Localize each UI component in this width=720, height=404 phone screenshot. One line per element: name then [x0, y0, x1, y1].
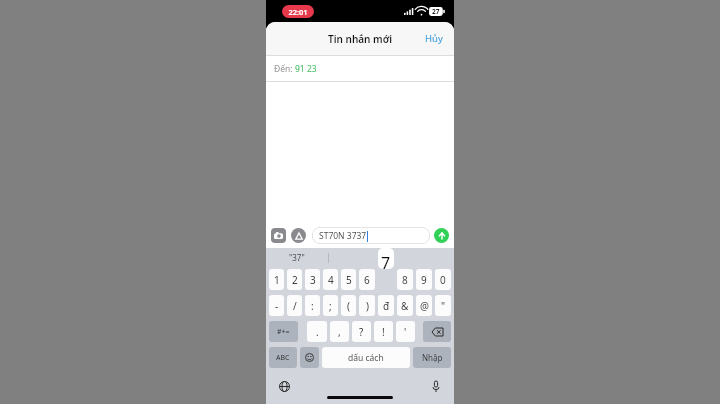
button[interactable]: ! [374, 321, 393, 342]
staticText: 7 [381, 252, 391, 269]
staticText: ; [329, 299, 332, 313]
staticText: 2 [292, 273, 298, 287]
staticText: ABC [276, 353, 290, 363]
staticText: ( [347, 299, 350, 313]
button[interactable]: Đến: [266, 56, 454, 81]
staticText: 5 [346, 273, 352, 287]
staticText: 1 [274, 273, 280, 287]
button[interactable]: 1 [269, 269, 284, 290]
button[interactable]: 9 [416, 269, 432, 290]
staticText: #+= [277, 327, 290, 337]
button[interactable]: 0 [435, 269, 451, 290]
staticText: - [275, 299, 279, 313]
button[interactable]: #+= [269, 321, 298, 342]
staticText: 27 [432, 7, 440, 16]
button[interactable]: "37" [266, 248, 328, 267]
button[interactable]: Dictation [427, 377, 445, 395]
button[interactable]: đ [378, 295, 394, 316]
button[interactable]: 7 [378, 248, 394, 269]
button[interactable]: " [435, 295, 451, 316]
button[interactable]: ; [323, 295, 338, 316]
button[interactable]: Hủy [414, 24, 454, 53]
staticText: 91 23 [295, 63, 317, 75]
staticText: . [316, 325, 319, 339]
staticText: dấu cách [348, 352, 384, 364]
button[interactable]: , [330, 321, 349, 342]
button[interactable]: Emoji [300, 347, 319, 368]
staticText: 8 [402, 273, 408, 287]
button[interactable]: ) [359, 295, 375, 316]
staticText: Hủy [425, 32, 443, 45]
staticText: ) [366, 299, 369, 313]
staticText: ST70N 3737 [319, 230, 367, 242]
button[interactable]: ( [341, 295, 356, 316]
button[interactable]: 3 [305, 269, 320, 290]
button[interactable]: Change keyboard [275, 377, 293, 395]
button[interactable]: Send [434, 228, 449, 243]
button[interactable] [329, 248, 391, 267]
staticText: 9 [421, 273, 427, 287]
button[interactable]: 8 [397, 269, 413, 290]
staticText: ? [359, 325, 364, 339]
button[interactable]: : [305, 295, 320, 316]
button[interactable]: - [269, 295, 284, 316]
staticText: ' [404, 325, 407, 339]
staticText: Đến: [274, 63, 295, 75]
button[interactable]: Nhập [413, 347, 451, 368]
staticText: đ [383, 299, 390, 313]
staticText: 22:01 [288, 7, 308, 17]
staticText: & [401, 299, 409, 313]
staticText: Nhập [422, 352, 443, 363]
staticText: 0 [440, 273, 446, 287]
button[interactable]: @ [416, 295, 432, 316]
staticText: , [338, 325, 341, 339]
button[interactable] [392, 248, 454, 267]
button[interactable]: Apps [291, 228, 306, 243]
staticText: "37" [289, 252, 305, 263]
staticText: Tin nhắn mới [328, 32, 393, 46]
button[interactable]: 4 [323, 269, 338, 290]
button[interactable]: Camera [271, 228, 286, 243]
button[interactable]: ' [396, 321, 415, 342]
staticText: 4 [328, 273, 334, 287]
button[interactable]: 2 [287, 269, 302, 290]
staticText: / [293, 299, 297, 313]
staticText: " [441, 299, 446, 313]
button[interactable]: Backspace [423, 321, 451, 342]
staticText: ! [382, 325, 385, 339]
button[interactable]: dấu cách [322, 347, 410, 368]
staticText: 6 [364, 273, 370, 287]
button[interactable]: 5 [341, 269, 356, 290]
button[interactable]: . [307, 321, 327, 342]
button[interactable]: 6 [359, 269, 375, 290]
staticText: 3 [310, 273, 316, 287]
button[interactable]: ? [352, 321, 371, 342]
button[interactable]: ST70N 3737 [312, 227, 430, 244]
button[interactable]: / [287, 295, 302, 316]
staticText: : [311, 299, 314, 313]
button[interactable]: ABC [269, 347, 297, 368]
button[interactable]: & [397, 295, 413, 316]
staticText: @ [420, 299, 429, 313]
